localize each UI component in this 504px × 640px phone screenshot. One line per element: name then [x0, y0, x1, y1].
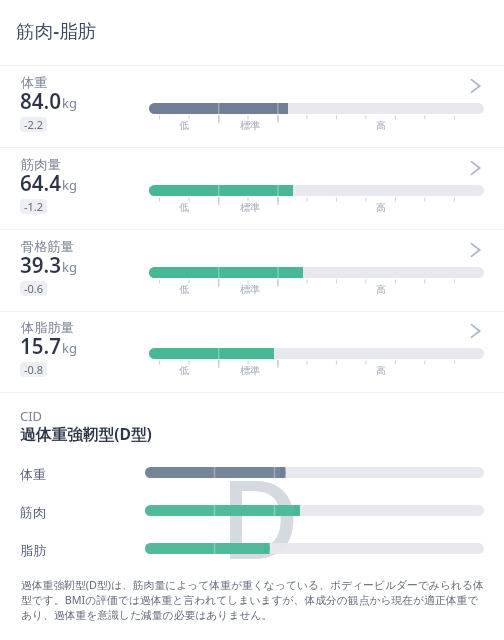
staticText: 標準	[240, 285, 260, 296]
staticText: 筋肉	[20, 504, 46, 520]
staticText: CID	[20, 409, 43, 424]
staticText: -0.8	[24, 362, 44, 377]
staticText: 体脂肪量	[21, 321, 74, 336]
staticText: 低	[179, 366, 189, 377]
button[interactable]: 詳細を見る	[465, 319, 489, 343]
staticText: 低	[179, 121, 189, 132]
staticText: 高	[376, 285, 386, 296]
button[interactable]: 体脂肪量	[0, 310, 504, 392]
staticText: 過体重強靭型(D型)	[20, 426, 152, 445]
button[interactable]: 詳細を見る	[465, 74, 489, 98]
staticText: 標準	[240, 203, 260, 214]
button[interactable]: 詳細を見る	[465, 238, 489, 262]
staticText: 骨格筋量	[21, 240, 74, 255]
staticText: 高	[376, 366, 386, 377]
staticText: kg	[62, 255, 77, 277]
staticText: D	[220, 471, 300, 583]
staticText: kg	[62, 91, 77, 113]
staticText: kg	[62, 336, 77, 358]
staticText: 体重	[21, 76, 48, 91]
staticText: 体重	[20, 466, 46, 482]
button[interactable]: 骨格筋量	[0, 229, 504, 311]
button[interactable]: 筋肉量	[0, 147, 504, 229]
staticText: -0.6	[24, 281, 44, 296]
staticText: 高	[376, 121, 386, 132]
staticText: 筋肉量	[21, 158, 61, 173]
button[interactable]: 体重	[0, 65, 504, 147]
staticText: -2.2	[24, 117, 44, 132]
staticText: 標準	[240, 121, 260, 132]
staticText: -1.2	[24, 199, 44, 214]
staticText: 筋肉-脂肪	[16, 22, 97, 44]
staticText: 過体重強靭型(D型)は、筋肉量によって体重が重くなっている、ボディービルダーでみ…	[21, 578, 485, 622]
staticText: kg	[62, 173, 77, 195]
staticText: 標準	[240, 366, 260, 377]
staticText: 39.3	[20, 256, 62, 278]
staticText: 低	[179, 203, 189, 214]
staticText: 脂肪	[20, 542, 46, 558]
staticText: 低	[179, 285, 189, 296]
staticText: 64.4	[20, 174, 62, 196]
staticText: 15.7	[20, 337, 62, 359]
staticText: 高	[376, 203, 386, 214]
staticText: 84.0	[20, 92, 62, 114]
button[interactable]: 詳細を見る	[465, 156, 489, 180]
